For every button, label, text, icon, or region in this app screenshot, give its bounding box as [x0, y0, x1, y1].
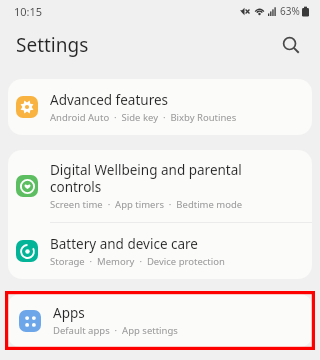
button[interactable]: Digital Wellbeing and parental controls	[8, 150, 312, 222]
staticText: Screen time · App timers · Bedtime mode	[50, 198, 243, 211]
staticText: Storage · Memory · Device protection	[50, 255, 225, 268]
staticText: Digital Wellbeing and parental controls	[50, 161, 242, 196]
staticText: Advanced features	[50, 91, 169, 109]
button[interactable]: Battery and device care	[8, 223, 312, 279]
staticText: 10:15	[14, 4, 43, 19]
button[interactable]: Advanced features	[8, 79, 312, 135]
staticText: Default apps · App settings	[53, 324, 178, 337]
staticText: Apps	[53, 304, 85, 322]
staticText: Settings	[16, 32, 89, 58]
staticText: Battery and device care	[50, 235, 198, 253]
staticText: Android Auto · Side key · Bixby Routines	[50, 111, 237, 124]
button[interactable]: Search	[276, 30, 306, 60]
staticText: 63%	[280, 4, 300, 18]
button[interactable]: Apps	[8, 294, 312, 347]
